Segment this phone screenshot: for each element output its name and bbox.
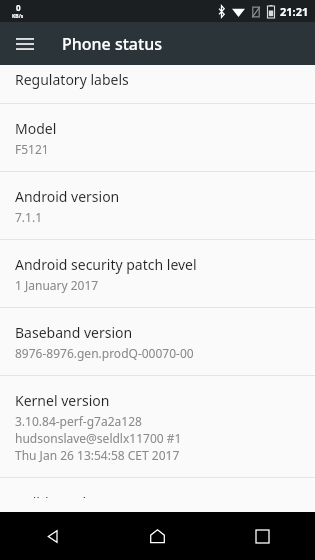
staticText: Regulatory labels [15,70,129,89]
staticText: hudsonslave@seldlx11700 #1 [15,430,182,446]
button[interactable]: Open navigation menu [8,27,42,61]
button[interactable]: Back [0,512,105,560]
staticText: Build number [15,493,105,498]
staticText: KB/s [12,13,24,20]
staticText: Phone status [62,33,162,55]
staticText: Kernel version [15,391,110,410]
staticText: Baseband version [15,323,133,342]
button[interactable]: Regulatory labels [0,65,315,103]
button[interactable]: Baseband version [0,308,315,375]
staticText: 1 January 2017 [15,277,99,293]
staticText: F5121 [15,141,49,157]
staticText: 3.10.84-perf-g7a2a128 [15,413,142,429]
staticText: Android security patch level [15,255,197,274]
staticText: 0 [16,2,21,13]
button[interactable]: Build number [0,478,315,512]
staticText: 21:21 [280,4,309,19]
staticText: Android version [15,187,120,206]
button[interactable]: Recent apps [210,512,315,560]
button[interactable]: Kernel version [0,376,315,477]
staticText: Thu Jan 26 13:54:58 CET 2017 [15,447,180,463]
button[interactable]: Model [0,104,315,171]
button[interactable]: Android version [0,172,315,239]
staticText: 7.1.1 [15,209,43,225]
button[interactable]: Home [105,512,210,560]
button[interactable]: Android security patch level [0,240,315,307]
staticText: 8976-8976.gen.prodQ-00070-00 [15,345,194,361]
staticText: Model [15,119,57,138]
